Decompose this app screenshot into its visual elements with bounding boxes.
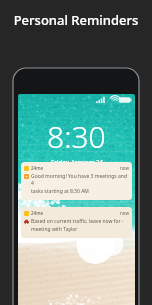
- staticText: Good morning! You have 3 meetings and 4: [31, 173, 129, 187]
- button[interactable]: 24me app icon: [21, 207, 132, 238]
- other: 24me app icon: [24, 211, 29, 216]
- staticText: meeting with Taylor: [31, 226, 78, 233]
- staticText: Personal Reminders: [0, 11, 152, 29]
- button[interactable]: 24me app icon: [21, 162, 132, 200]
- staticText: now: [120, 210, 129, 216]
- staticText: Based on current traffic, leave now for …: [31, 218, 124, 225]
- staticText: 8:30: [47, 116, 106, 157]
- staticText: Friday, January 24: [51, 158, 103, 166]
- other: Traffic: [24, 219, 29, 224]
- other: 24me app icon: [24, 166, 29, 171]
- staticText: 24me: [31, 165, 43, 171]
- staticText: 24me: [31, 210, 43, 216]
- staticText: now: [120, 165, 129, 171]
- staticText: tasks starting at 8:30 AM: [31, 188, 89, 195]
- other: Reminder: [24, 174, 29, 179]
